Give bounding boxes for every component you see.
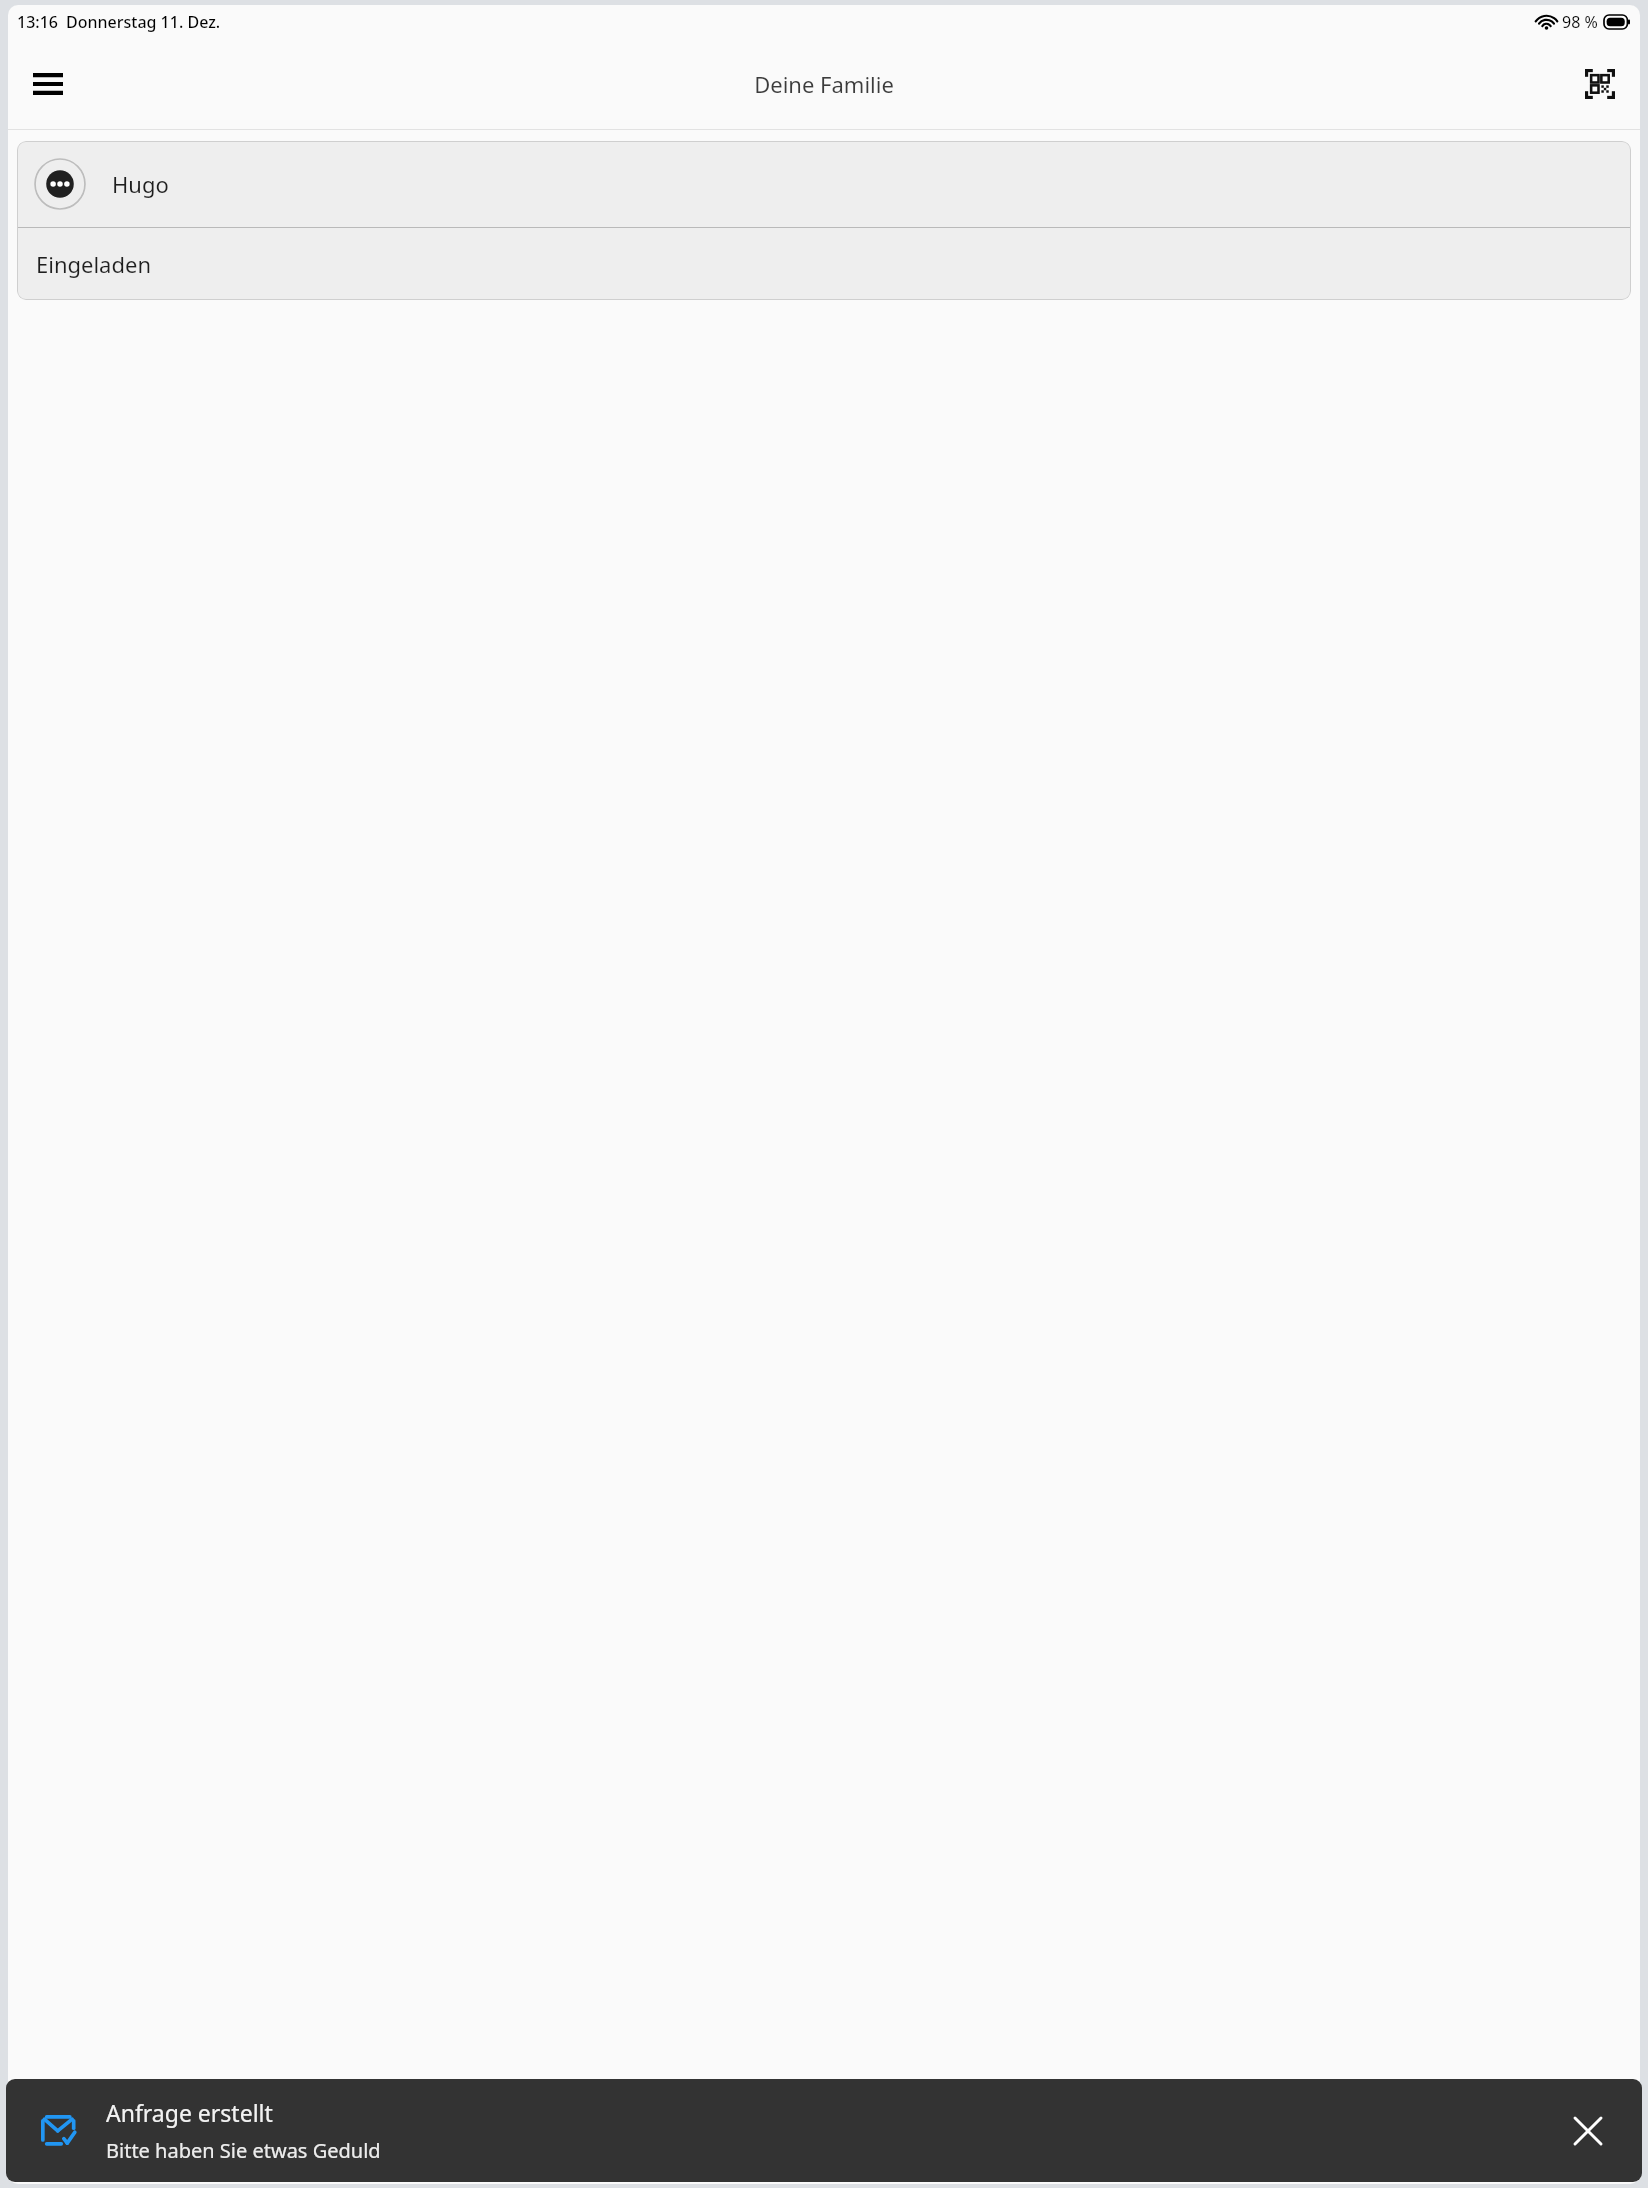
staticText: 98 % <box>1562 11 1598 33</box>
staticText: Donnerstag 11. Dez. <box>66 11 221 33</box>
button[interactable]: Hugo <box>17 141 1631 227</box>
button[interactable]: Eingeladen <box>17 228 1631 300</box>
other: Nachricht gesendet <box>38 2109 82 2153</box>
staticText: 13:16 <box>17 11 58 33</box>
button[interactable]: QR-Code scannen <box>1574 58 1626 110</box>
staticText: Anfrage erstellt <box>106 2097 273 2128</box>
button[interactable]: Menü <box>22 58 74 110</box>
staticText: Deine Familie <box>754 69 894 99</box>
staticText: Bitte haben Sie etwas Geduld <box>106 2137 381 2164</box>
staticText: Eingeladen <box>36 249 151 279</box>
button[interactable]: Schließen <box>1562 2105 1614 2157</box>
staticText: Hugo <box>112 169 169 199</box>
